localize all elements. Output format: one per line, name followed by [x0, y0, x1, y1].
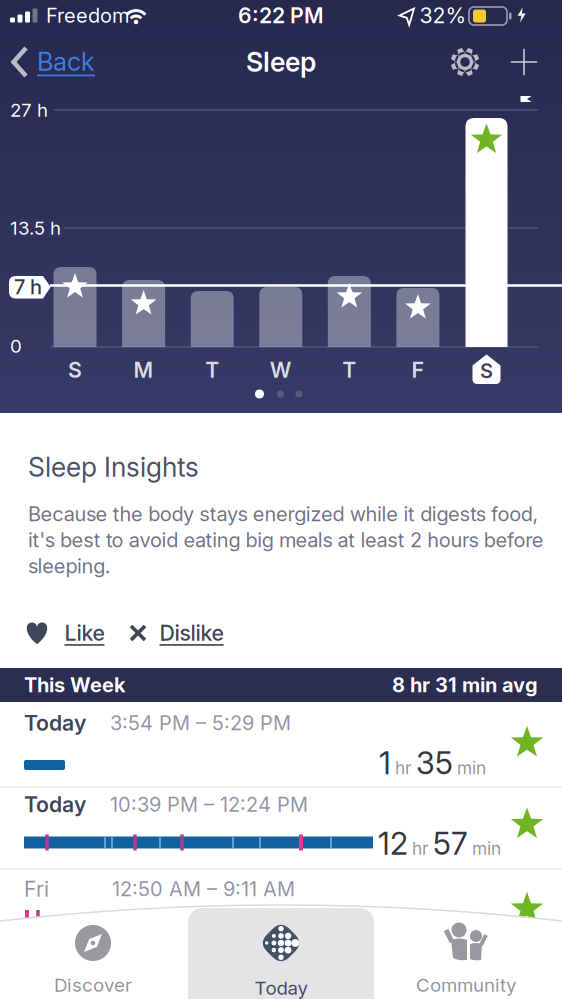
button[interactable]: Like [21, 617, 104, 648]
staticText: 10:39 PM – 12:24 PM [110, 793, 308, 816]
staticText: Today [24, 792, 86, 817]
staticText: 8 hr 31 min avg [392, 673, 538, 697]
staticText: Like [64, 620, 104, 646]
staticText: 0 [10, 335, 22, 357]
staticText: hr [395, 758, 412, 778]
staticText: Community [416, 974, 516, 996]
button[interactable]: Today [188, 889, 374, 999]
staticText: This Week [24, 673, 126, 697]
staticText: T [342, 357, 356, 383]
staticText: 1 [379, 745, 391, 781]
staticText: S [68, 357, 82, 383]
staticText: 3:54 PM – 5:29 PM [110, 711, 291, 735]
button[interactable]: Add [504, 42, 544, 82]
staticText: hr [412, 838, 429, 858]
staticText: M [134, 357, 154, 383]
staticText: Sleep Insights [28, 451, 199, 483]
staticText: T [205, 357, 219, 383]
button[interactable]: Today [0, 787, 562, 869]
staticText: sleeping. [28, 554, 111, 578]
staticText: Because the body stays energized while i… [28, 502, 538, 526]
staticText: W [270, 357, 292, 383]
staticText: it's best to avoid eating big meals at l… [28, 528, 544, 552]
staticText: 7 h [14, 275, 42, 299]
staticText: 12 [378, 825, 408, 862]
staticText: min [457, 758, 486, 778]
button[interactable]: Community [386, 889, 546, 999]
button[interactable]: Back [0, 40, 140, 84]
staticText: Freedom [46, 4, 129, 27]
staticText: Dislike [159, 620, 223, 646]
staticText: Today [24, 710, 86, 736]
staticText: 12:50 AM – 9:11 AM [112, 877, 295, 901]
button[interactable]: Dislike [128, 620, 223, 646]
staticText: 27 h [10, 99, 48, 121]
staticText: Today [254, 977, 307, 999]
staticText: Discover [54, 974, 132, 996]
staticText: Sleep [246, 46, 316, 78]
button[interactable]: Fri [0, 869, 562, 949]
button[interactable]: Today [0, 702, 562, 787]
staticText: 32% [419, 3, 466, 28]
staticText: Back [37, 47, 95, 76]
staticText: S [480, 359, 493, 383]
staticText: min [472, 838, 501, 858]
staticText: Fri [24, 876, 49, 902]
staticText: 35 [416, 745, 453, 781]
staticText: 6:22 PM [238, 3, 324, 28]
button[interactable]: Settings [443, 40, 487, 84]
staticText: 57 [433, 825, 468, 862]
staticText: F [411, 357, 424, 383]
staticText: 13.5 h [10, 217, 61, 239]
button[interactable]: Discover [13, 889, 173, 999]
